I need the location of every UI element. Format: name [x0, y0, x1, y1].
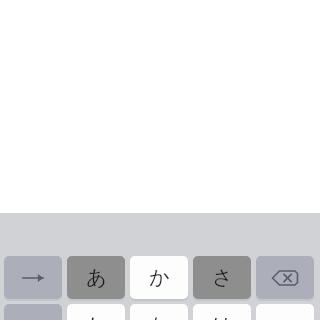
button[interactable]: Next candidate [4, 256, 62, 299]
staticText: な [149, 313, 170, 320]
button[interactable]: 変換 [256, 304, 314, 320]
staticText: た [86, 313, 107, 320]
button[interactable]: さ [193, 256, 251, 299]
staticText: あ [86, 265, 107, 290]
button[interactable]: あ [67, 256, 125, 299]
staticText: は [212, 313, 233, 320]
button[interactable]: Backspace [256, 256, 314, 299]
staticText: か [149, 265, 170, 290]
button[interactable]: か [130, 256, 188, 299]
button[interactable]: な [130, 304, 188, 320]
button[interactable]: た [67, 304, 125, 320]
button[interactable]: は [193, 304, 251, 320]
button[interactable]: Previous candidate [4, 304, 62, 320]
staticText: さ [212, 265, 233, 290]
